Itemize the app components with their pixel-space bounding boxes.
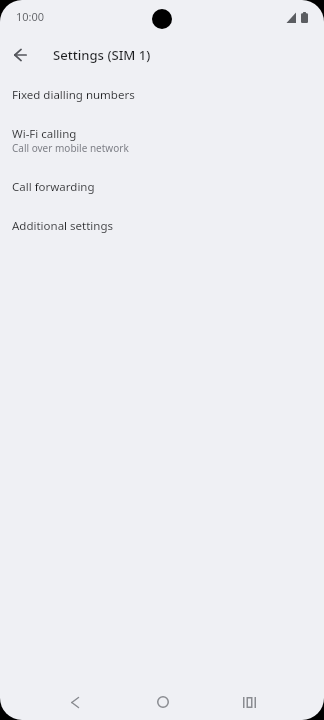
staticText: Settings (SIM 1) (53, 46, 151, 64)
staticText: 10:00 (16, 9, 45, 24)
button[interactable]: Call forwarding (0, 167, 324, 206)
staticText: Wi-Fi calling (12, 126, 77, 142)
button[interactable]: Wi-Fi calling (0, 114, 324, 167)
staticText: Additional settings (12, 218, 114, 234)
button[interactable]: Fixed dialling numbers (0, 75, 324, 114)
button[interactable]: Navigate up (5, 39, 36, 70)
staticText: Call over mobile network (12, 141, 129, 155)
button[interactable]: Home (119, 684, 206, 720)
button[interactable]: Additional settings (0, 206, 324, 245)
staticText: Call forwarding (12, 179, 95, 195)
staticText: Fixed dialling numbers (12, 87, 135, 103)
button[interactable]: Recent apps (206, 684, 293, 720)
button[interactable]: Back (31, 684, 119, 720)
